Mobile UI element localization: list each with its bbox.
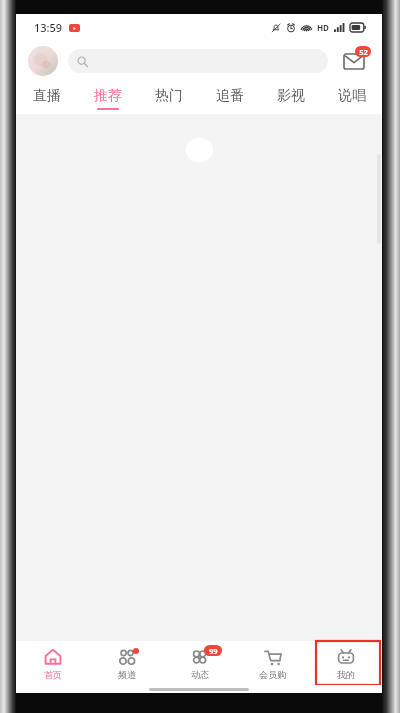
staticText: 推荐 bbox=[94, 87, 122, 105]
staticText: 52 bbox=[359, 47, 368, 57]
button[interactable]: 我的 bbox=[309, 641, 382, 685]
staticText: 热门 bbox=[155, 87, 183, 105]
staticText: 说唱 bbox=[338, 87, 366, 105]
button[interactable]: 追番 bbox=[199, 82, 260, 114]
staticText: 追番 bbox=[216, 87, 244, 105]
button[interactable]: 影视 bbox=[260, 82, 321, 114]
staticText: 13:59 bbox=[34, 20, 63, 35]
button[interactable]: Profile avatar bbox=[28, 46, 58, 76]
staticText: 首页 bbox=[44, 669, 62, 680]
button[interactable]: 热门 bbox=[138, 82, 199, 114]
staticText: 直播 bbox=[33, 87, 61, 105]
staticText: 会员购 bbox=[259, 669, 286, 680]
button[interactable]: 99 bbox=[163, 641, 236, 685]
button[interactable]: Messages bbox=[338, 45, 370, 77]
button[interactable]: 首页 bbox=[16, 641, 90, 685]
button[interactable] bbox=[68, 49, 328, 73]
staticText: 影视 bbox=[277, 87, 305, 105]
staticText: 动态 bbox=[191, 669, 209, 680]
staticText: 频道 bbox=[118, 669, 136, 680]
staticText: 99 bbox=[209, 646, 218, 656]
staticText: HD bbox=[317, 22, 329, 33]
button[interactable]: 会员购 bbox=[236, 641, 309, 685]
button[interactable]: 频道 bbox=[90, 641, 163, 685]
button[interactable]: 说唱 bbox=[321, 82, 382, 114]
staticText: 我的 bbox=[337, 669, 355, 680]
button[interactable]: 直播 bbox=[16, 82, 77, 114]
button[interactable]: 推荐 bbox=[77, 82, 138, 114]
